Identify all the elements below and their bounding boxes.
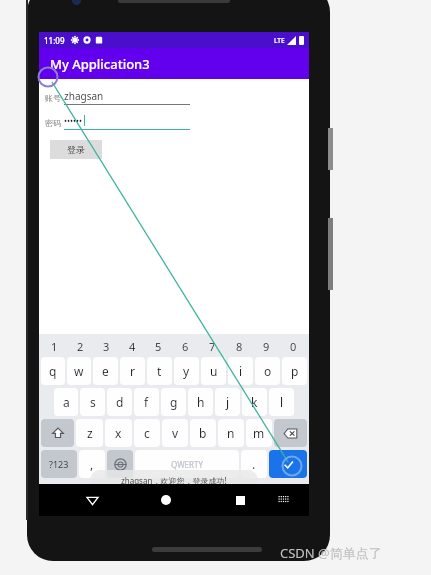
button[interactable]: .: [241, 450, 267, 478]
staticText: 1: [51, 339, 58, 354]
staticText: b: [199, 425, 207, 441]
button[interactable]: Back: [80, 488, 104, 512]
button[interactable]: Enter: [269, 450, 307, 478]
button[interactable]: b: [190, 419, 216, 447]
staticText: 3: [103, 339, 110, 354]
staticText: QWERTY: [171, 459, 204, 470]
staticText: e: [102, 363, 109, 379]
button[interactable]: c: [134, 419, 160, 447]
staticText: 2: [77, 339, 84, 354]
staticText: v: [172, 425, 179, 441]
staticText: ••••••: [64, 115, 83, 126]
staticText: zhagsan，欢迎您，登录成功!: [121, 475, 227, 486]
button[interactable]: e: [93, 357, 118, 385]
button[interactable]: Backspace: [274, 419, 307, 447]
button[interactable]: q: [41, 357, 65, 385]
button[interactable]: 5: [145, 337, 172, 355]
staticText: i: [239, 363, 243, 379]
button[interactable]: o: [255, 357, 280, 385]
button[interactable]: r: [120, 357, 145, 385]
button[interactable]: 6: [172, 337, 199, 355]
button[interactable]: i: [228, 357, 253, 385]
button[interactable]: y: [174, 357, 199, 385]
button[interactable]: Hide keyboard: [271, 488, 295, 512]
staticText: 8: [236, 339, 243, 354]
button[interactable]: p: [282, 357, 307, 385]
button[interactable]: Shift: [41, 419, 74, 447]
button[interactable]: f: [134, 388, 159, 416]
button[interactable]: d: [107, 388, 132, 416]
staticText: g: [170, 394, 178, 410]
staticText: u: [210, 363, 218, 379]
button[interactable]: j: [215, 388, 240, 416]
staticText: 9: [263, 339, 270, 354]
staticText: 4: [129, 339, 136, 354]
staticText: f: [144, 394, 149, 410]
staticText: x: [115, 425, 122, 441]
staticText: k: [251, 394, 258, 410]
staticText: 密码: [45, 118, 61, 128]
staticText: t: [157, 363, 162, 379]
staticText: h: [197, 394, 205, 410]
button[interactable]: zhagsan: [64, 89, 190, 105]
staticText: r: [130, 363, 135, 379]
staticText: a: [63, 394, 70, 410]
button[interactable]: 9: [253, 337, 280, 355]
staticText: m: [253, 425, 265, 441]
button[interactable]: s: [80, 388, 105, 416]
button[interactable]: z: [76, 419, 103, 447]
button[interactable]: 3: [93, 337, 119, 355]
button[interactable]: v: [162, 419, 188, 447]
button[interactable]: u: [201, 357, 226, 385]
staticText: 6: [182, 339, 189, 354]
button[interactable]: ,: [79, 450, 105, 478]
button[interactable]: a: [54, 388, 78, 416]
button[interactable]: 0: [280, 337, 307, 355]
staticText: .: [252, 456, 256, 472]
button[interactable]: k: [242, 388, 267, 416]
staticText: n: [227, 425, 235, 441]
staticText: 5: [155, 339, 162, 354]
staticText: 11:09: [44, 35, 65, 46]
button[interactable]: ••••••: [64, 115, 190, 130]
button[interactable]: h: [188, 388, 213, 416]
staticText: j: [226, 394, 230, 410]
staticText: ,: [90, 456, 94, 472]
button[interactable]: m: [246, 419, 272, 447]
button[interactable]: Home: [154, 488, 178, 512]
button[interactable]: 7: [199, 337, 226, 355]
button[interactable]: Language: [107, 450, 133, 478]
button[interactable]: l: [269, 388, 294, 416]
button[interactable]: QWERTY: [135, 450, 239, 478]
staticText: c: [144, 425, 150, 441]
button[interactable]: w: [67, 357, 91, 385]
staticText: CSDN @简单点了: [280, 544, 382, 562]
button[interactable]: x: [105, 419, 132, 447]
button[interactable]: g: [161, 388, 186, 416]
button[interactable]: t: [147, 357, 172, 385]
button[interactable]: 2: [67, 337, 93, 355]
staticText: My Application3: [50, 55, 150, 73]
button[interactable]: 8: [226, 337, 253, 355]
button[interactable]: n: [218, 419, 244, 447]
staticText: ?123: [49, 458, 69, 470]
button[interactable]: 1: [41, 337, 67, 355]
staticText: d: [116, 394, 124, 410]
staticText: 7: [209, 339, 216, 354]
button[interactable]: 登录: [50, 140, 102, 159]
staticText: y: [183, 363, 190, 379]
button[interactable]: ?123: [41, 450, 77, 478]
staticText: q: [49, 363, 57, 379]
staticText: w: [74, 363, 84, 379]
button[interactable]: 4: [119, 337, 145, 355]
staticText: 账号: [45, 93, 61, 103]
staticText: l: [280, 394, 284, 410]
staticText: LTE: [274, 36, 285, 45]
staticText: zhagsan: [64, 89, 104, 103]
staticText: z: [87, 425, 93, 441]
button[interactable]: Recents: [228, 488, 252, 512]
staticText: 登录: [67, 144, 85, 155]
staticText: o: [264, 363, 272, 379]
staticText: s: [90, 394, 96, 410]
staticText: p: [291, 363, 299, 379]
